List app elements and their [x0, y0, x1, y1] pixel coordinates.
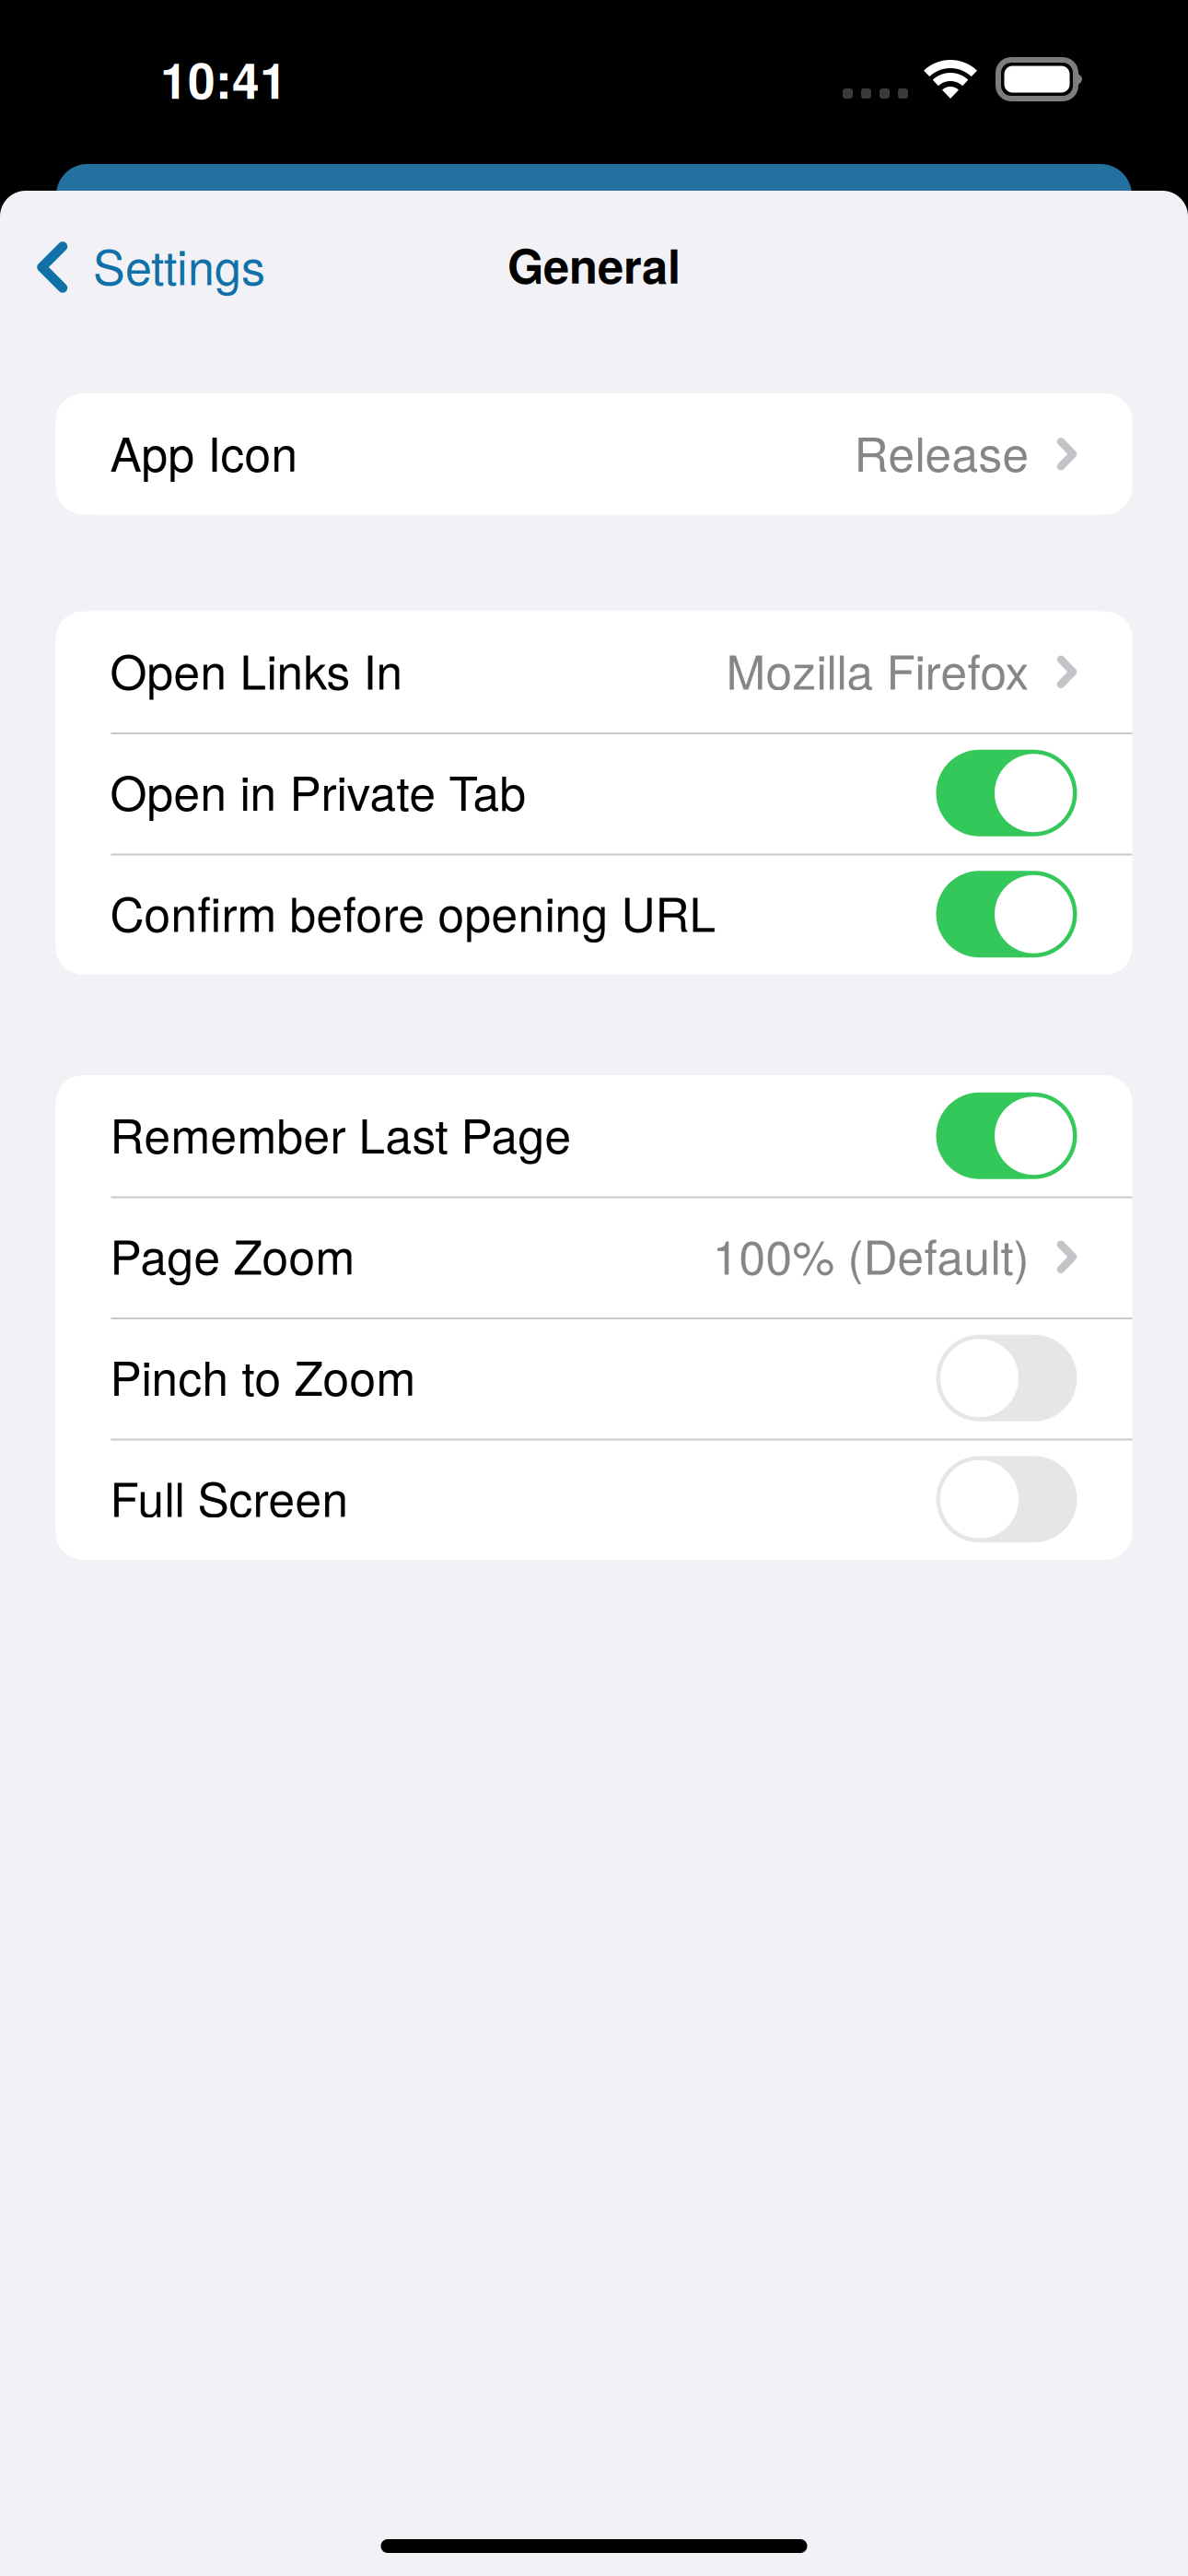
button[interactable]: Open Links In [56, 611, 1132, 732]
button[interactable]: Pinch to Zoom [56, 1317, 1132, 1439]
staticText: Mozilla Firefox [726, 635, 1029, 703]
staticText: 10:41 [160, 44, 287, 114]
button[interactable]: Open in Private Tab [56, 732, 1132, 854]
staticText: Pinch to Zoom [110, 1341, 416, 1409]
button[interactable]: Full Screen [56, 1439, 1132, 1560]
staticText: Remember Last Page [110, 1099, 571, 1167]
button[interactable]: Page Zoom [56, 1196, 1132, 1317]
button[interactable]: Remember Last Page [56, 1075, 1132, 1196]
button[interactable]: App Icon [56, 393, 1132, 515]
staticText: General [507, 231, 681, 298]
staticText: Full Screen [110, 1463, 349, 1530]
staticText: Confirm before opening URL [110, 878, 716, 945]
staticText: Open Links In [110, 635, 403, 703]
button[interactable]: Settings [0, 217, 291, 312]
staticText: Settings [93, 230, 265, 299]
staticText: Page Zoom [110, 1220, 355, 1288]
staticText: Release [854, 417, 1029, 485]
staticText: 100% (Default) [712, 1220, 1029, 1288]
staticText: Open in Private Tab [110, 756, 526, 824]
staticText: App Icon [110, 417, 298, 485]
button[interactable]: Confirm before opening URL [56, 854, 1132, 975]
